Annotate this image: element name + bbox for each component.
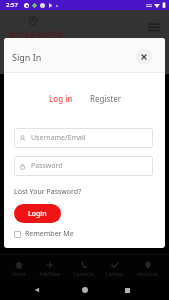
- button[interactable]: Home: [76, 281, 94, 299]
- staticText: Add New: [39, 271, 61, 278]
- staticText: Register: [90, 93, 122, 104]
- button[interactable]: Recents: [118, 281, 136, 299]
- button[interactable]: Close: [136, 49, 152, 65]
- staticText: Contacts: [73, 271, 94, 278]
- staticText: Username/Email: [31, 133, 86, 143]
- button[interactable]: Log in: [45, 91, 77, 106]
- staticText: Password: [31, 161, 63, 171]
- button[interactable]: Menu: [144, 17, 164, 37]
- button[interactable]: Listings: [105, 261, 125, 278]
- button[interactable]: Add New: [38, 261, 62, 278]
- button[interactable]: Contacts: [72, 261, 95, 278]
- button[interactable]: Lost Your Password?: [14, 186, 82, 198]
- button[interactable]: About us: [136, 261, 159, 278]
- staticText: Sign In: [12, 51, 42, 63]
- staticText: About us: [137, 271, 158, 278]
- staticText: Lost Your Password?: [14, 187, 82, 197]
- staticText: Login: [28, 209, 47, 219]
- staticText: Remember Me: [25, 229, 74, 239]
- staticText: orissainfo: [9, 26, 64, 41]
- button[interactable]: Username/Email: [14, 128, 153, 148]
- staticText: Listings: [106, 271, 124, 278]
- button[interactable]: Home: [10, 261, 27, 278]
- button[interactable]: Login: [14, 204, 61, 223]
- button[interactable]: Remember Me: [14, 228, 74, 240]
- button[interactable]: Password: [14, 156, 153, 176]
- button[interactable]: Back: [28, 281, 46, 299]
- staticText: Home: [11, 271, 26, 278]
- button[interactable]: Register: [86, 91, 126, 106]
- staticText: 2:57: [6, 1, 18, 9]
- staticText: Log in: [49, 93, 73, 104]
